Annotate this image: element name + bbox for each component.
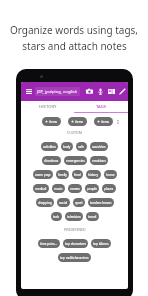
staticText: home [106, 173, 115, 177]
staticText: top idioms [93, 242, 109, 246]
staticText: travel [88, 215, 97, 219]
button[interactable]: places [102, 184, 116, 193]
staticText: places [104, 187, 114, 191]
button[interactable]: exam prep [33, 170, 53, 179]
staticText: items [49, 120, 58, 124]
staticText: history [88, 173, 99, 177]
staticText: shopping [38, 201, 52, 205]
staticText: items [75, 120, 84, 124]
button[interactable]: directions [42, 156, 61, 165]
button[interactable]: medical [33, 184, 49, 193]
staticText: activities [43, 145, 56, 149]
button[interactable]: tandem lesson [88, 198, 114, 207]
button[interactable]: emergencies [64, 156, 87, 165]
staticText: items [101, 120, 110, 124]
staticText: CUSTOM [67, 130, 82, 135]
staticText: people [87, 187, 97, 191]
button[interactable]: Camera [84, 86, 95, 97]
staticText: time pairs... [40, 242, 58, 246]
staticText: sport [75, 201, 83, 205]
staticText: exam prep [35, 173, 51, 177]
button[interactable]: Menu [23, 86, 34, 97]
staticText: music [54, 187, 63, 191]
staticText: family [58, 173, 67, 177]
button[interactable]: travel [86, 212, 99, 221]
button[interactable]: social [57, 198, 70, 207]
button[interactable]: emotions [90, 156, 108, 165]
staticText: emergencies [66, 159, 85, 163]
button[interactable]: cafe [76, 142, 87, 151]
button[interactable]: family [56, 170, 69, 179]
button[interactable]: television [65, 212, 83, 221]
button[interactable]: history [86, 170, 101, 179]
staticText: names [70, 187, 80, 191]
button[interactable]: shopping [36, 198, 54, 207]
button[interactable]: people [85, 184, 99, 193]
staticText: top multicharacters [60, 256, 89, 260]
staticText: emotions [92, 159, 106, 163]
staticText: JEP, jyutping, english [37, 89, 78, 95]
button[interactable]: top idioms [91, 239, 111, 248]
button[interactable]: tech [51, 212, 62, 221]
staticText: tech [53, 215, 60, 219]
button[interactable]: Microphone [95, 86, 106, 97]
staticText: medical [35, 187, 47, 191]
button[interactable]: TAGS [74, 101, 128, 112]
button[interactable]: Flashcards [106, 86, 117, 97]
staticText: stars and attach notes [22, 39, 127, 53]
button[interactable]: music [52, 184, 65, 193]
button[interactable]: items [68, 117, 87, 126]
staticText: countries [92, 145, 106, 149]
staticText: HISTORY [39, 104, 57, 110]
button[interactable]: home [104, 170, 117, 179]
button[interactable]: items [94, 117, 113, 126]
staticText: Organize words using tags, [10, 23, 138, 37]
button[interactable]: activities [41, 142, 58, 151]
button[interactable]: body [61, 142, 73, 151]
staticText: TAGS [96, 104, 107, 110]
button[interactable]: countries [90, 142, 108, 151]
staticText: food [74, 173, 81, 177]
button[interactable]: food [72, 170, 83, 179]
staticText: television [67, 215, 81, 219]
button[interactable]: top multicharacters [58, 253, 91, 262]
button[interactable]: Edit [117, 86, 128, 97]
staticText: social [59, 201, 68, 205]
button[interactable]: More options [113, 117, 122, 126]
staticText: PREDEFINED [64, 227, 86, 232]
button[interactable]: items [42, 117, 61, 126]
button[interactable]: HISTORY [21, 101, 74, 112]
button[interactable]: names [68, 184, 82, 193]
button[interactable]: top characters [63, 239, 88, 248]
button[interactable]: time pairs... [38, 239, 60, 248]
button[interactable]: sport [73, 198, 85, 207]
staticText: cafe [78, 145, 85, 149]
staticText: top characters [65, 242, 86, 246]
staticText: body [63, 145, 71, 149]
button[interactable]: JEP, jyutping, english [35, 87, 80, 96]
staticText: directions [44, 159, 59, 163]
staticText: tandem lesson [90, 201, 112, 205]
